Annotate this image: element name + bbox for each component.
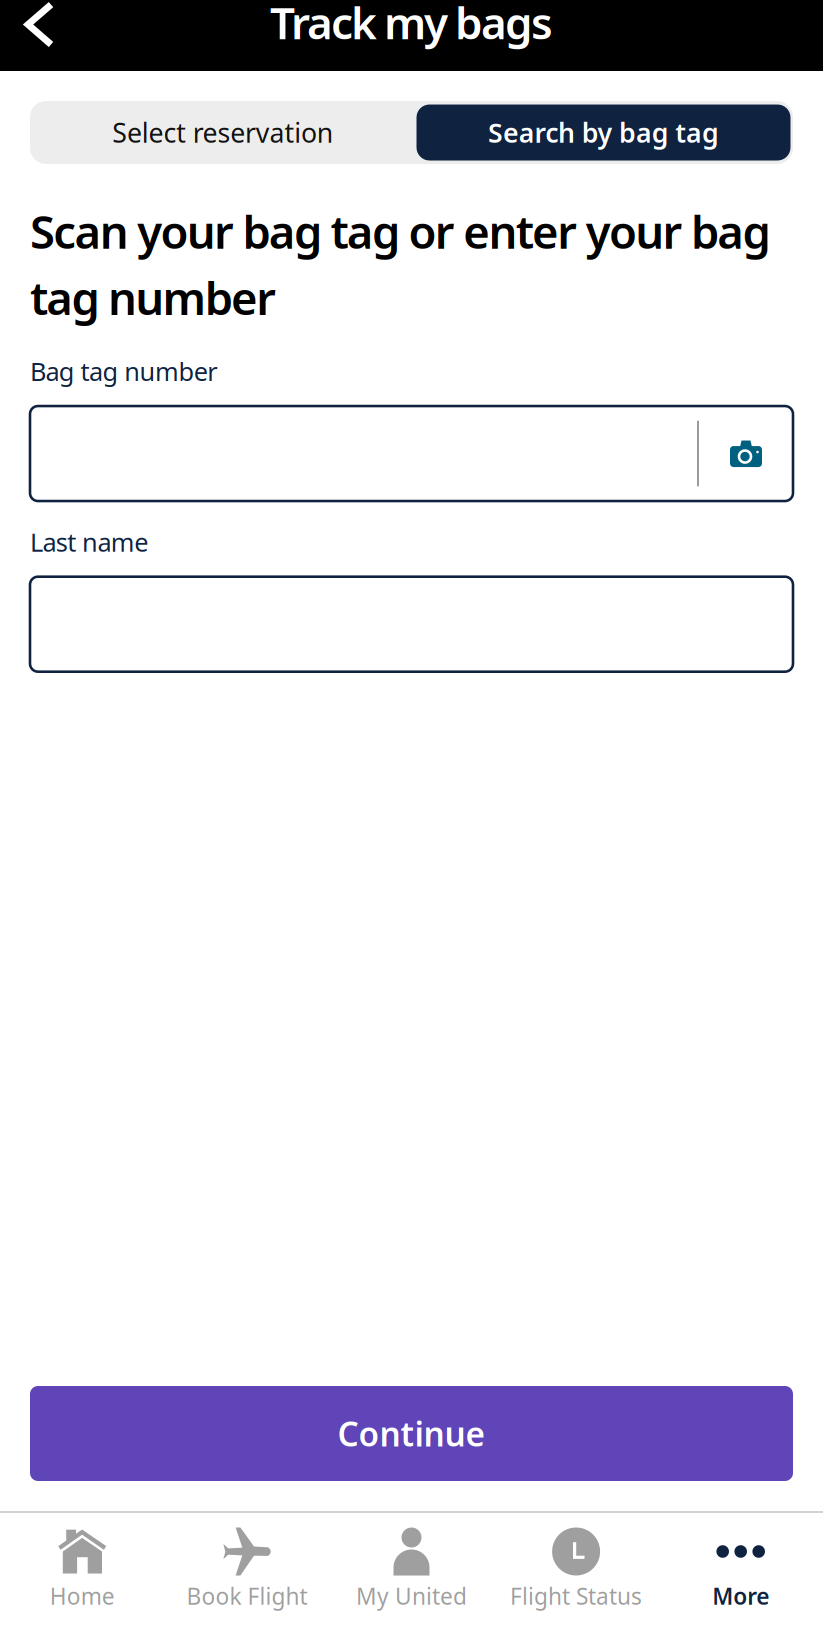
button[interactable]: Scan bag tag <box>699 408 793 498</box>
staticText: Book Flight <box>186 1581 307 1611</box>
staticText: Flight Status <box>510 1581 642 1611</box>
button[interactable]: Flight Status <box>494 1513 658 1647</box>
button[interactable]: More <box>658 1513 823 1647</box>
staticText: Track my bags <box>270 0 553 51</box>
button[interactable]: Book Flight <box>165 1513 329 1647</box>
staticText: Bag tag number <box>30 354 217 388</box>
button[interactable]: Back <box>0 0 72 66</box>
button[interactable]: Select reservation <box>30 101 415 164</box>
button[interactable]: Home <box>0 1513 165 1647</box>
staticText: Scan your bag tag or enter your bag tag … <box>30 201 770 327</box>
staticText: Search by bag tag <box>488 115 719 150</box>
staticText: More <box>712 1581 769 1611</box>
staticText: My United <box>356 1581 467 1611</box>
button[interactable]: Search by bag tag <box>415 101 792 164</box>
staticText: Last name <box>30 525 148 559</box>
staticText: Select reservation <box>112 115 333 150</box>
staticText: Home <box>50 1581 115 1611</box>
staticText: Continue <box>337 1411 485 1456</box>
button[interactable]: My United <box>329 1513 494 1647</box>
button[interactable]: Continue <box>30 1386 793 1481</box>
